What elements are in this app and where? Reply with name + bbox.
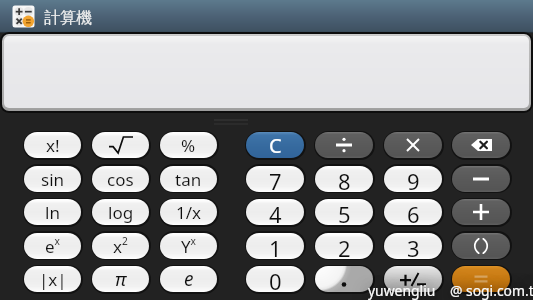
staticText: Yx [181, 234, 197, 258]
staticText: x2 [113, 234, 128, 258]
button[interactable]: sin [24, 166, 81, 192]
button[interactable]: 2 [315, 233, 373, 259]
staticText: C [269, 132, 282, 158]
button[interactable]: 3 [384, 233, 442, 259]
button[interactable]: log [92, 199, 149, 225]
button[interactable]: parentheses [452, 233, 510, 259]
button[interactable]: equals [452, 266, 510, 292]
button[interactable]: 8 [315, 166, 373, 192]
button[interactable]: minus [452, 166, 510, 192]
button[interactable]: plus minus [384, 266, 442, 292]
staticText: 4 [269, 199, 282, 225]
staticText: e [184, 266, 194, 292]
staticText: x! [46, 134, 60, 157]
button[interactable]: divide [315, 132, 373, 158]
staticText: 8 [338, 166, 351, 192]
staticText: 3 [407, 233, 420, 259]
button[interactable]: 5 [315, 199, 373, 225]
button[interactable]: tan [160, 166, 217, 192]
staticText: 9 [407, 166, 420, 192]
button[interactable]: 7 [246, 166, 304, 192]
staticText: π [115, 266, 127, 292]
button[interactable]: e [160, 266, 217, 292]
staticText: |x| [39, 268, 67, 291]
button[interactable]: 4 [246, 199, 304, 225]
button[interactable]: |x| [24, 266, 81, 292]
staticText: tan [175, 168, 202, 191]
staticText: cos [107, 168, 134, 191]
staticText: 6 [407, 199, 420, 225]
button[interactable]: plus [452, 199, 510, 225]
button[interactable]: x! [24, 132, 81, 158]
staticText: @ [450, 281, 463, 300]
staticText: 0 [269, 266, 282, 292]
button[interactable]: π [92, 266, 149, 292]
button[interactable]: ln [24, 199, 81, 225]
button[interactable]: 6 [384, 199, 442, 225]
button[interactable]: decimal point [315, 266, 373, 292]
staticText: 1 [269, 233, 282, 259]
button[interactable]: 0 [246, 266, 304, 292]
button[interactable]: x2 [92, 233, 149, 259]
staticText: 7 [269, 166, 282, 192]
button[interactable]: square root [92, 132, 149, 158]
button[interactable]: multiply [384, 132, 442, 158]
button[interactable]: 9 [384, 166, 442, 192]
staticText: 計算機 [44, 8, 92, 28]
button[interactable]: 1/x [160, 199, 217, 225]
staticText: ln [45, 201, 60, 224]
staticText: sin [41, 168, 65, 191]
staticText: yuwengliu [368, 281, 436, 300]
staticText: ex [45, 234, 60, 258]
button[interactable]: C [246, 132, 304, 158]
staticText: log [108, 201, 134, 224]
staticText: 5 [338, 199, 351, 225]
button[interactable]: % [160, 132, 217, 158]
button[interactable]: 1 [246, 233, 304, 259]
staticText: 1/x [176, 201, 202, 224]
button[interactable]: backspace [452, 132, 510, 158]
staticText: sogi.com.tw [466, 281, 533, 300]
staticText: 2 [338, 233, 351, 259]
button[interactable]: Yx [160, 233, 217, 259]
button[interactable]: ex [24, 233, 81, 259]
staticText: % [181, 134, 196, 157]
button[interactable]: cos [92, 166, 149, 192]
